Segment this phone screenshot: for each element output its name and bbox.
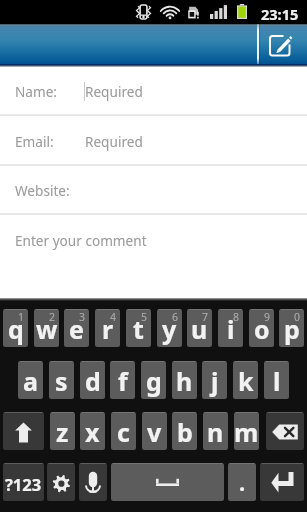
button[interactable]: s xyxy=(49,361,74,399)
button[interactable]: x xyxy=(80,412,105,450)
button[interactable]: h xyxy=(172,361,197,399)
staticText: x xyxy=(85,415,100,449)
button[interactable]: u xyxy=(187,309,212,347)
button[interactable]: m xyxy=(234,412,259,450)
staticText: h xyxy=(176,364,193,398)
staticText: u xyxy=(191,312,208,346)
button[interactable]: j xyxy=(202,361,227,399)
staticText: Website: xyxy=(15,181,70,200)
staticText: 7 xyxy=(202,310,209,324)
button[interactable]: o xyxy=(249,309,274,347)
button[interactable]: f xyxy=(110,361,135,399)
staticText: Enter your comment xyxy=(15,231,147,250)
staticText: y xyxy=(162,312,177,346)
button[interactable]: Name: xyxy=(0,67,307,116)
button[interactable]: c xyxy=(111,412,136,450)
button[interactable]: a xyxy=(18,361,43,399)
button[interactable]: ?123 xyxy=(3,463,44,501)
button[interactable]: k xyxy=(233,361,258,399)
staticText: c xyxy=(117,415,130,449)
button[interactable]: Shift xyxy=(3,412,44,450)
staticText: Required xyxy=(85,132,143,151)
button[interactable]: i xyxy=(218,309,243,347)
staticText: 6 xyxy=(172,310,179,324)
button[interactable]: b xyxy=(172,412,197,450)
staticText: r xyxy=(102,312,114,346)
button[interactable]: Settings xyxy=(47,463,75,501)
staticText: t xyxy=(133,312,144,346)
staticText: Email: xyxy=(15,132,54,151)
button[interactable]: l xyxy=(264,361,289,399)
staticText: f xyxy=(118,364,128,398)
button[interactable]: Backspace xyxy=(266,412,304,450)
staticText: ?123 xyxy=(5,473,42,495)
staticText: e xyxy=(69,312,84,346)
staticText: l xyxy=(273,364,281,398)
staticText: 2 xyxy=(49,310,56,324)
button[interactable]: d xyxy=(80,361,105,399)
staticText: z xyxy=(56,415,69,449)
button[interactable]: p xyxy=(279,309,304,347)
staticText: a xyxy=(23,364,38,398)
staticText: 9 xyxy=(264,310,271,324)
staticText: 8 xyxy=(233,310,240,324)
staticText: 4 xyxy=(110,310,117,324)
button[interactable]: r xyxy=(95,309,120,347)
staticText: b xyxy=(177,415,193,449)
staticText: k xyxy=(238,364,254,398)
button[interactable]: y xyxy=(157,309,182,347)
staticText: s xyxy=(55,364,68,398)
staticText: i xyxy=(227,312,235,346)
button[interactable]: e xyxy=(64,309,89,347)
staticText: d xyxy=(85,364,101,398)
button[interactable]: Enter xyxy=(260,463,304,501)
button[interactable]: . xyxy=(228,463,256,501)
button[interactable]: Enter your comment xyxy=(0,215,307,265)
staticText: m xyxy=(234,415,259,449)
staticText: n xyxy=(207,415,224,449)
staticText: 23:15 xyxy=(261,4,299,24)
button[interactable]: Email: xyxy=(0,116,307,166)
staticText: 1 xyxy=(18,310,25,324)
button[interactable]: Space xyxy=(111,463,224,501)
button[interactable]: v xyxy=(142,412,167,450)
staticText: q xyxy=(8,312,24,346)
staticText: w xyxy=(36,312,58,346)
staticText: p xyxy=(284,312,300,346)
staticText: j xyxy=(211,364,219,398)
button[interactable]: Compose new comment xyxy=(260,24,307,64)
button[interactable]: Voice input xyxy=(79,463,107,501)
button[interactable]: g xyxy=(141,361,166,399)
button[interactable]: w xyxy=(34,309,59,347)
button[interactable]: n xyxy=(203,412,228,450)
button[interactable]: z xyxy=(50,412,75,450)
staticText: . xyxy=(239,467,246,497)
staticText: v xyxy=(147,415,162,449)
button[interactable]: q xyxy=(3,309,28,347)
staticText: o xyxy=(254,312,270,346)
staticText: 3 xyxy=(79,310,86,324)
staticText: 5 xyxy=(141,310,148,324)
button[interactable]: Website: xyxy=(0,166,307,215)
staticText: g xyxy=(146,364,162,398)
staticText: 0 xyxy=(294,310,301,324)
staticText: Name: xyxy=(15,82,57,101)
staticText: Required xyxy=(85,82,143,101)
button[interactable]: t xyxy=(126,309,151,347)
